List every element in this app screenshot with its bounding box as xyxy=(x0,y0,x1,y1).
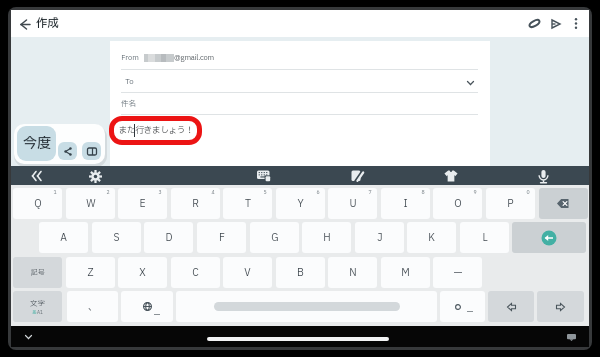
staticText: K xyxy=(428,230,435,245)
staticText: ー xyxy=(453,265,463,280)
button[interactable]: R xyxy=(171,188,220,219)
button[interactable]: M xyxy=(381,257,430,288)
staticText: A xyxy=(60,230,67,245)
staticText: G xyxy=(271,230,279,245)
button[interactable]: K xyxy=(407,222,456,253)
staticText: H xyxy=(323,230,331,245)
button[interactable]: E xyxy=(118,188,167,219)
button[interactable]: 文字 xyxy=(13,291,62,322)
button[interactable] xyxy=(512,222,586,253)
staticText: @gmail.com xyxy=(174,52,214,63)
button[interactable]: S xyxy=(92,222,141,253)
staticText: 作成 xyxy=(36,15,59,32)
staticText: S xyxy=(113,230,120,245)
staticText: J xyxy=(377,230,383,245)
staticText: Y xyxy=(297,196,304,211)
staticText: T xyxy=(245,196,251,211)
button[interactable] xyxy=(547,15,564,32)
button[interactable] xyxy=(207,337,389,341)
button[interactable]: D xyxy=(144,222,193,253)
button[interactable] xyxy=(256,169,271,182)
staticText: また行きましょう！ xyxy=(118,124,194,137)
staticText: C xyxy=(192,265,199,280)
button[interactable]: V xyxy=(223,257,272,288)
button[interactable]: 記号 xyxy=(13,257,62,288)
button[interactable]: P xyxy=(486,188,535,219)
button[interactable]: 今度 xyxy=(17,126,56,161)
staticText: L xyxy=(482,230,488,245)
button[interactable]: T xyxy=(223,188,272,219)
button[interactable] xyxy=(17,16,33,32)
staticText: B xyxy=(297,265,304,280)
staticText: From xyxy=(121,52,139,63)
button[interactable] xyxy=(30,169,44,182)
staticText: Z xyxy=(87,265,94,280)
button[interactable] xyxy=(526,15,543,32)
button[interactable] xyxy=(121,291,173,322)
staticText: 6 xyxy=(316,189,320,196)
button[interactable] xyxy=(567,15,584,32)
button[interactable]: A xyxy=(39,222,88,253)
button[interactable]: I xyxy=(381,188,430,219)
button[interactable] xyxy=(24,334,33,340)
staticText: 今度 xyxy=(23,133,51,154)
button[interactable]: ー xyxy=(433,257,482,288)
staticText: あ xyxy=(32,309,37,316)
button[interactable]: H xyxy=(302,222,351,253)
button[interactable]: Q xyxy=(13,188,62,219)
button[interactable] xyxy=(350,169,364,182)
button[interactable]: X xyxy=(118,257,167,288)
staticText: N xyxy=(349,265,357,280)
staticText: 4 xyxy=(211,189,215,196)
button[interactable]: L xyxy=(460,222,509,253)
button[interactable]: J xyxy=(355,222,404,253)
button[interactable] xyxy=(536,169,550,183)
button[interactable] xyxy=(440,291,485,322)
staticText: 文字 xyxy=(30,298,45,309)
staticText: F xyxy=(219,230,225,245)
staticText: 、 xyxy=(88,299,98,314)
staticText: 0 xyxy=(526,189,530,196)
button[interactable] xyxy=(537,291,584,322)
button[interactable] xyxy=(539,188,588,219)
button[interactable] xyxy=(488,291,534,322)
button[interactable]: G xyxy=(250,222,299,253)
button[interactable]: Z xyxy=(66,257,115,288)
staticText: W xyxy=(86,196,96,211)
button[interactable] xyxy=(444,169,458,182)
button[interactable] xyxy=(82,142,101,160)
button[interactable]: W xyxy=(66,188,115,219)
button[interactable] xyxy=(88,169,102,183)
button[interactable] xyxy=(58,142,77,160)
staticText: U xyxy=(349,196,357,211)
button[interactable] xyxy=(565,333,577,342)
staticText: M xyxy=(401,265,410,280)
staticText: 件名 xyxy=(121,98,136,109)
staticText: X xyxy=(139,265,146,280)
staticText: O xyxy=(454,196,462,211)
button[interactable]: 、 xyxy=(67,291,118,322)
button[interactable]: B xyxy=(276,257,325,288)
button[interactable]: N xyxy=(328,257,377,288)
staticText: I xyxy=(403,196,408,211)
staticText: R xyxy=(192,196,199,211)
staticText: 記号 xyxy=(31,268,45,278)
staticText: 3 xyxy=(158,189,162,196)
button[interactable] xyxy=(176,291,437,322)
staticText: To xyxy=(125,76,134,87)
button[interactable]: U xyxy=(328,188,377,219)
staticText: 9 xyxy=(473,189,477,196)
button[interactable]: O xyxy=(433,188,482,219)
button[interactable]: F xyxy=(197,222,246,253)
button[interactable] xyxy=(110,70,490,92)
staticText: 7 xyxy=(368,189,372,196)
button[interactable]: Y xyxy=(276,188,325,219)
staticText: 1 xyxy=(53,189,57,196)
staticText: Q xyxy=(34,196,42,211)
staticText: P xyxy=(507,196,514,211)
staticText: 8 xyxy=(421,189,425,196)
button[interactable]: C xyxy=(171,257,220,288)
staticText: 2 xyxy=(106,189,110,196)
staticText: D xyxy=(165,230,173,245)
staticText: E xyxy=(139,196,146,211)
